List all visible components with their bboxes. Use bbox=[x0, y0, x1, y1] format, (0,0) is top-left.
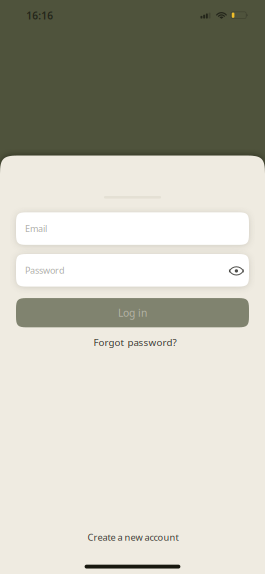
staticText: Email bbox=[25, 222, 47, 235]
button[interactable]: Create a new account bbox=[88, 531, 179, 543]
button[interactable]: Forgot password? bbox=[93, 336, 176, 349]
button[interactable]: Log in bbox=[16, 298, 249, 327]
staticText: Forgot password? bbox=[93, 336, 176, 349]
staticText: Password bbox=[25, 264, 65, 276]
staticText: 16:16 bbox=[26, 9, 53, 22]
button[interactable]: Email bbox=[16, 212, 249, 245]
staticText: Create a new account bbox=[88, 531, 179, 543]
staticText: Log in bbox=[118, 306, 147, 320]
button[interactable]: Password bbox=[16, 254, 249, 287]
